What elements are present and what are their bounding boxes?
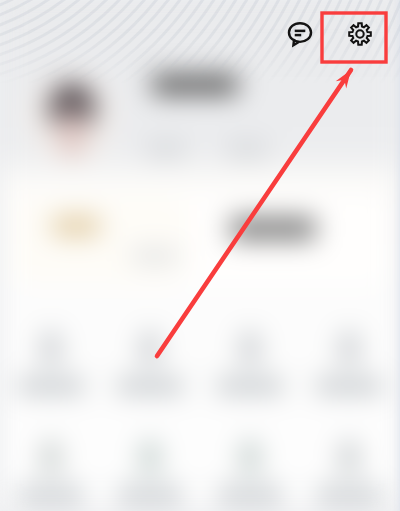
button[interactable]: Messages (278, 12, 322, 56)
button[interactable]: Settings (338, 12, 382, 56)
